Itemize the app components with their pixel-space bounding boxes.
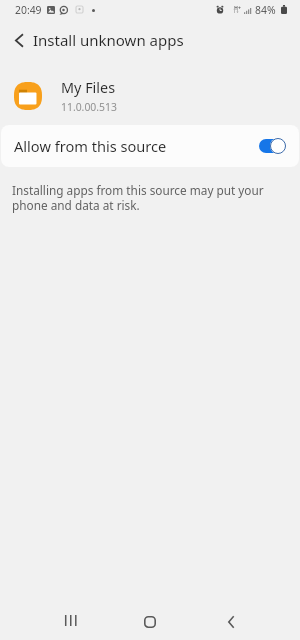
staticText: H+ bbox=[234, 4, 241, 11]
staticText: Installing apps from this source may put… bbox=[12, 182, 264, 214]
staticText: 11.0.00.513 bbox=[61, 100, 117, 114]
button[interactable]: Back bbox=[211, 602, 251, 640]
staticText: 20:49 bbox=[15, 3, 42, 17]
staticText: Allow from this source bbox=[14, 136, 167, 156]
staticText: My Files bbox=[61, 78, 116, 98]
staticText: Install unknown apps bbox=[33, 30, 184, 50]
button[interactable]: Home bbox=[130, 602, 170, 640]
button[interactable]: Recent apps bbox=[50, 600, 90, 640]
staticText: 84% bbox=[255, 3, 276, 17]
button[interactable]: Navigate up bbox=[6, 27, 32, 53]
button[interactable]: My Files bbox=[0, 68, 300, 124]
button[interactable]: Allow from this source bbox=[1, 125, 299, 167]
